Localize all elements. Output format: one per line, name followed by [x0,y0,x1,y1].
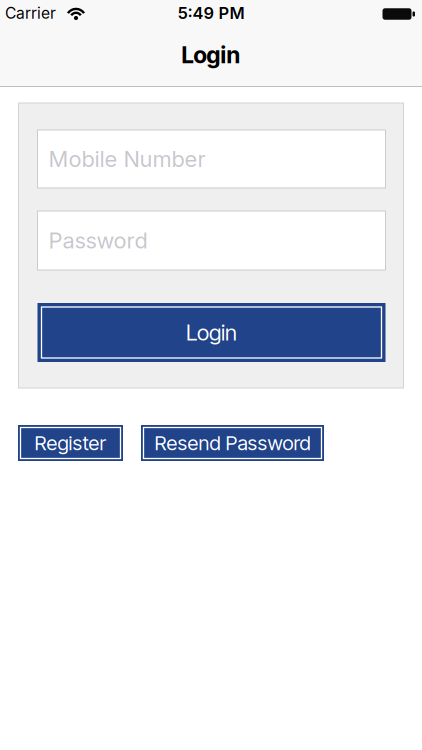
button[interactable]: Mobile Number [37,130,385,188]
button[interactable]: Resend Password [141,425,324,461]
staticText: Password [48,227,147,254]
staticText: Register [34,431,106,455]
staticText: Resend Password [154,431,310,455]
staticText: 5:49 PM [177,3,244,23]
staticText: Login [186,319,237,346]
staticText: Carrier [5,4,56,22]
staticText: Mobile Number [48,146,205,172]
button[interactable]: Password [37,211,385,270]
button[interactable]: Login [37,303,385,362]
staticText: Login [181,41,240,69]
button[interactable]: Register [18,425,123,461]
